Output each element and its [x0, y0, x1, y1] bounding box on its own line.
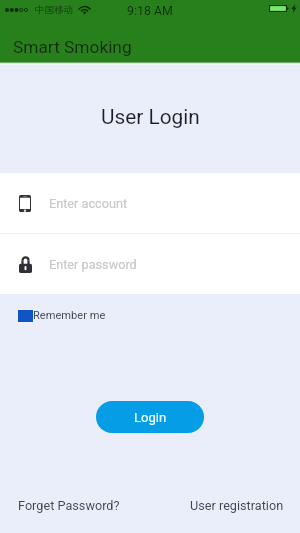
- staticText: Remember me: [33, 309, 106, 322]
- staticText: Smart Smoking: [13, 37, 132, 57]
- button[interactable]: Forget Password?: [18, 498, 120, 513]
- staticText: User Login: [101, 105, 200, 129]
- button[interactable]: Enter account: [0, 173, 300, 233]
- button[interactable]: Login: [96, 401, 204, 433]
- button[interactable]: Remember me: [18, 309, 106, 322]
- button[interactable]: Enter password: [0, 234, 300, 294]
- staticText: 中国移动: [35, 4, 73, 16]
- staticText: Login: [134, 410, 167, 425]
- staticText: Enter password: [49, 257, 137, 272]
- button[interactable]: User registration: [190, 498, 284, 513]
- staticText: Enter account: [49, 196, 128, 211]
- staticText: 9:18 AM: [127, 3, 173, 18]
